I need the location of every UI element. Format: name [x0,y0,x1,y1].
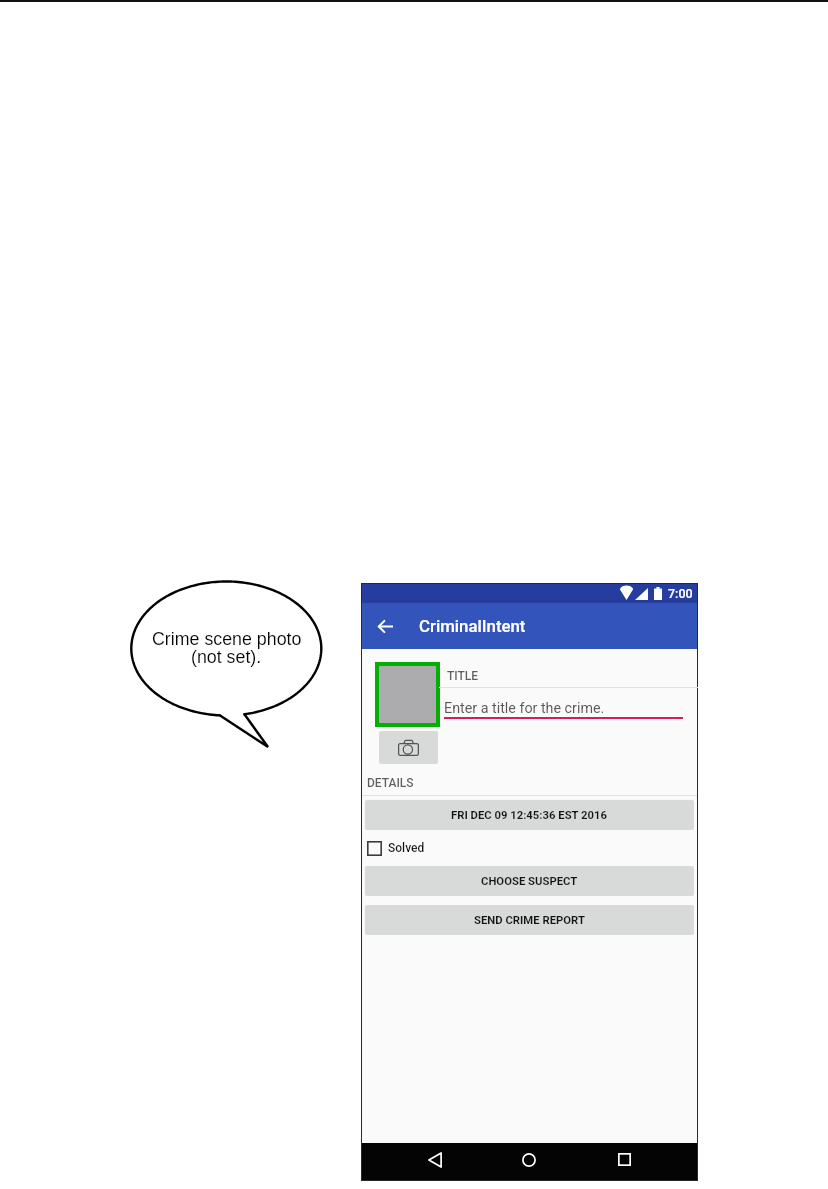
button[interactable]: Back [415,1141,455,1178]
button[interactable]: Recent apps [604,1141,644,1178]
button[interactable]: Home [509,1141,549,1178]
staticText: FRI DEC 09 12:45:36 EST 2016 [451,809,608,822]
staticText: 7:00 [668,586,693,601]
staticText: Enter a title for the crime. [444,700,605,717]
button[interactable]: Solved [362,834,697,862]
staticText: DETAILS [367,776,414,790]
staticText: CHOOSE SUSPECT [481,875,578,888]
staticText: CriminalIntent [419,616,526,636]
button[interactable]: Take a picture [379,731,438,764]
staticText: TITLE [447,669,479,683]
staticText: Solved [388,841,425,855]
button[interactable]: FRI DEC 09 12:45:36 EST 2016 [365,800,694,830]
button[interactable]: Navigate up [369,610,401,642]
staticText: SEND CRIME REPORT [474,914,585,927]
staticText: (not set). [191,647,262,667]
button[interactable]: SEND CRIME REPORT [365,905,694,935]
staticText: Crime scene photo [152,629,302,649]
button[interactable]: CHOOSE SUSPECT [365,866,694,896]
